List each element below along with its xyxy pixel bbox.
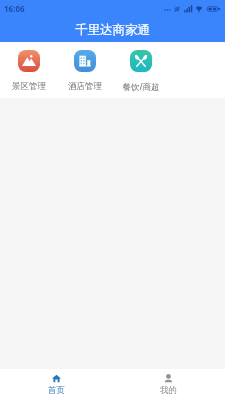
button[interactable]: 我的: [112, 369, 225, 400]
staticText: 酒店管理: [68, 81, 102, 92]
button[interactable]: 景区管理: [0, 42, 57, 92]
staticText: 我的: [160, 385, 177, 396]
staticText: 千里达商家通: [75, 22, 150, 38]
other: Status icons: [164, 5, 220, 13]
staticText: 景区管理: [12, 81, 46, 92]
staticText: 16:06: [4, 3, 25, 14]
button[interactable]: 首页: [0, 369, 112, 400]
staticText: 首页: [48, 385, 65, 396]
button[interactable]: 餐饮/商超: [113, 42, 169, 93]
staticText: 餐饮/商超: [122, 81, 160, 93]
button[interactable]: 酒店管理: [57, 42, 113, 92]
